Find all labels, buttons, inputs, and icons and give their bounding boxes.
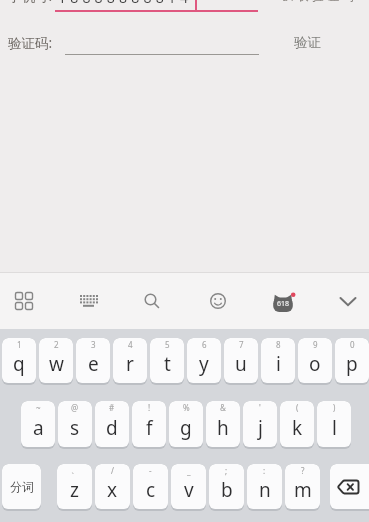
staticText: - bbox=[149, 465, 152, 476]
staticText: ? bbox=[301, 465, 305, 476]
button[interactable]: 5 bbox=[150, 338, 184, 385]
staticText: t bbox=[164, 351, 171, 377]
button[interactable]: 9 bbox=[298, 338, 332, 385]
staticText: i bbox=[276, 351, 281, 377]
staticText: ) bbox=[333, 402, 336, 413]
staticText: / bbox=[111, 465, 114, 476]
staticText: _ bbox=[187, 465, 191, 476]
staticText: e bbox=[88, 351, 99, 377]
staticText: g bbox=[180, 415, 192, 441]
staticText: o bbox=[309, 351, 321, 377]
button[interactable]: 7 bbox=[224, 338, 258, 385]
button[interactable]: : bbox=[247, 464, 282, 511]
staticText: k bbox=[292, 415, 303, 441]
button[interactable]: 1 bbox=[2, 338, 36, 385]
staticText: 8 bbox=[276, 339, 281, 350]
button[interactable]: 0 bbox=[335, 338, 369, 385]
button[interactable]: 获取验证码 bbox=[280, 0, 355, 3]
staticText: h bbox=[217, 415, 229, 441]
button[interactable]: ? bbox=[285, 464, 320, 511]
staticText: v bbox=[184, 477, 194, 503]
staticText: : bbox=[263, 465, 266, 476]
button[interactable]: ! bbox=[132, 401, 166, 449]
button[interactable]: / bbox=[95, 464, 130, 511]
staticText: s bbox=[70, 415, 80, 441]
button[interactable]: 2 bbox=[39, 338, 73, 385]
staticText: 2 bbox=[54, 339, 59, 350]
button[interactable]: # bbox=[95, 401, 129, 449]
button[interactable]: % bbox=[169, 401, 203, 449]
button[interactable] bbox=[68, 281, 108, 321]
staticText: q bbox=[13, 351, 25, 377]
staticText: n bbox=[259, 477, 271, 503]
staticText: 618 bbox=[277, 299, 290, 309]
button[interactable]: - bbox=[133, 464, 168, 511]
button[interactable]: 6 bbox=[187, 338, 221, 385]
button[interactable] bbox=[330, 464, 369, 511]
button[interactable]: _ bbox=[171, 464, 206, 511]
staticText: d bbox=[106, 415, 118, 441]
staticText: l bbox=[332, 415, 337, 441]
staticText: @ bbox=[71, 402, 79, 413]
staticText: & bbox=[220, 402, 226, 413]
staticText: 9 bbox=[313, 339, 318, 350]
button[interactable]: 、 bbox=[57, 464, 92, 511]
button[interactable] bbox=[328, 281, 368, 321]
staticText: p bbox=[346, 351, 358, 377]
button[interactable]: & bbox=[206, 401, 240, 449]
staticText: m bbox=[294, 477, 312, 503]
button[interactable]: 验证 bbox=[294, 34, 321, 51]
staticText: ! bbox=[148, 402, 151, 413]
staticText: a bbox=[33, 415, 44, 441]
staticText: ' bbox=[259, 402, 261, 413]
staticText: f bbox=[146, 415, 153, 441]
staticText: c bbox=[146, 477, 156, 503]
staticText: u bbox=[235, 351, 247, 377]
button[interactable]: 8 bbox=[261, 338, 295, 385]
button[interactable]: 分词 bbox=[2, 464, 41, 511]
staticText: r bbox=[126, 351, 134, 377]
staticText: x bbox=[107, 477, 118, 503]
button[interactable]: 4 bbox=[113, 338, 147, 385]
staticText: 6 bbox=[202, 339, 207, 350]
staticText: 5 bbox=[165, 339, 170, 350]
button[interactable] bbox=[4, 281, 44, 321]
staticText: 4 bbox=[128, 339, 133, 350]
button[interactable] bbox=[198, 281, 238, 321]
staticText: 1 bbox=[17, 339, 22, 350]
staticText: z bbox=[70, 477, 79, 503]
staticText: 7 bbox=[239, 339, 244, 350]
button[interactable] bbox=[132, 281, 172, 321]
button[interactable] bbox=[330, 464, 369, 511]
staticText: # bbox=[109, 402, 115, 413]
staticText: ~ bbox=[36, 402, 41, 413]
staticText: 、 bbox=[71, 465, 79, 476]
button[interactable]: 3 bbox=[76, 338, 110, 385]
button[interactable]: 618 bbox=[263, 281, 303, 321]
button[interactable]: @ bbox=[58, 401, 92, 449]
button[interactable]: ' bbox=[243, 401, 277, 449]
staticText: 0 bbox=[350, 339, 355, 350]
staticText: ; bbox=[225, 465, 228, 476]
staticText: j bbox=[258, 415, 263, 441]
button[interactable]: ~ bbox=[21, 401, 55, 449]
staticText: % bbox=[183, 402, 190, 413]
button[interactable]: ) bbox=[317, 401, 351, 449]
staticText: 验证码: bbox=[8, 34, 53, 52]
staticText: 分词 bbox=[10, 479, 34, 494]
button[interactable]: ; bbox=[209, 464, 244, 511]
staticText: 3 bbox=[91, 339, 96, 350]
staticText: 18888888814 bbox=[58, 0, 193, 7]
staticText: b bbox=[221, 477, 233, 503]
staticText: ( bbox=[296, 402, 299, 413]
staticText: w bbox=[49, 351, 64, 377]
staticText: 手机号: bbox=[8, 0, 53, 5]
button[interactable]: ( bbox=[280, 401, 314, 449]
staticText: y bbox=[199, 351, 209, 377]
